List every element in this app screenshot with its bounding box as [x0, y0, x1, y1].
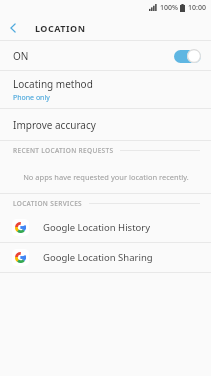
staticText: LOCATION	[35, 22, 86, 34]
button[interactable]: Google Location Sharing	[0, 243, 211, 272]
staticText: RECENT LOCATION REQUESTS	[13, 146, 114, 155]
staticText: 10:00	[188, 3, 206, 13]
button[interactable]: ON	[0, 41, 211, 70]
button[interactable]: Improve accuracy	[0, 109, 211, 140]
staticText: Google Location History	[43, 221, 151, 234]
staticText: Google Location Sharing	[43, 251, 153, 264]
staticText: No apps have requested your location rec…	[23, 172, 189, 182]
staticText: Phone only	[13, 93, 50, 103]
staticText: 100%	[160, 3, 178, 13]
staticText: ON	[13, 49, 174, 63]
staticText: Improve accuracy	[13, 118, 96, 132]
button[interactable]: Google Location History	[0, 213, 211, 242]
staticText: LOCATION SERVICES	[13, 199, 83, 208]
staticText: Locating method	[13, 77, 93, 91]
button[interactable]: Back	[0, 15, 26, 40]
button[interactable]: Locating method	[0, 71, 211, 108]
